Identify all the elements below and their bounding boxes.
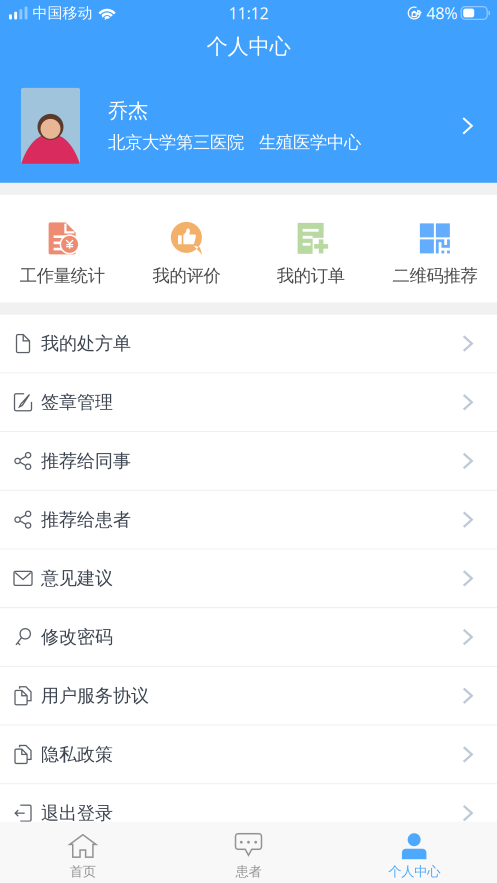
- staticText: 意见建议: [41, 567, 113, 590]
- staticText: 个人中心: [206, 33, 290, 60]
- button[interactable]: 工作量统计: [0, 222, 124, 287]
- button[interactable]: 乔杰: [0, 60, 497, 183]
- staticText: 用户服务协议: [41, 684, 149, 707]
- button[interactable]: 我的订单: [248, 222, 373, 287]
- button[interactable]: 推荐给同事: [0, 432, 497, 491]
- button[interactable]: 推荐给患者: [0, 491, 497, 549]
- button[interactable]: 我的处方单: [0, 315, 497, 373]
- staticText: 48%: [426, 2, 457, 24]
- staticText: 患者: [235, 863, 261, 880]
- staticText: 隐私政策: [41, 743, 113, 766]
- staticText: 我的订单: [277, 265, 345, 287]
- staticText: 签章管理: [41, 391, 113, 414]
- button[interactable]: 首页: [0, 822, 166, 883]
- button[interactable]: 患者: [166, 822, 331, 883]
- staticText: 北京大学第三医院 生殖医学中心: [108, 132, 361, 153]
- button[interactable]: 用户服务协议: [0, 667, 497, 726]
- staticText: 11:12: [228, 2, 268, 24]
- staticText: 乔杰: [108, 98, 148, 124]
- button[interactable]: 个人中心: [331, 822, 497, 883]
- staticText: 推荐给患者: [41, 508, 131, 531]
- staticText: 修改密码: [41, 626, 113, 648]
- staticText: 推荐给同事: [41, 450, 131, 472]
- staticText: 工作量统计: [20, 265, 105, 287]
- staticText: 个人中心: [388, 863, 440, 880]
- staticText: 我的处方单: [41, 332, 131, 355]
- staticText: 中国移动: [32, 4, 92, 22]
- button[interactable]: 意见建议: [0, 549, 497, 608]
- staticText: 二维码推荐: [392, 265, 477, 287]
- button[interactable]: 修改密码: [0, 608, 497, 667]
- button[interactable]: 隐私政策: [0, 726, 497, 784]
- button[interactable]: 二维码推荐: [373, 222, 497, 287]
- button[interactable]: 我的评价: [124, 222, 248, 287]
- button[interactable]: 退出登录: [0, 784, 497, 843]
- staticText: 首页: [70, 863, 96, 880]
- staticText: 退出登录: [41, 802, 113, 824]
- button[interactable]: 签章管理: [0, 373, 497, 432]
- staticText: 我的评价: [152, 265, 220, 287]
